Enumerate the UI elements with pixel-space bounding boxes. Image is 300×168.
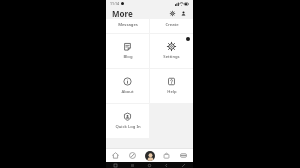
- staticText: Quick Log In: [115, 124, 141, 130]
- button[interactable]: Profile: [180, 10, 187, 17]
- staticText: Create: [165, 22, 179, 28]
- staticText: Settings: [163, 54, 180, 60]
- button[interactable]: Help: [150, 69, 193, 103]
- staticText: Blog: [123, 54, 133, 60]
- button[interactable]: Create: [150, 19, 193, 33]
- button[interactable]: Quick Log In: [106, 104, 149, 138]
- button[interactable]: Settings: [150, 34, 193, 68]
- button[interactable]: Messages: [106, 19, 149, 33]
- button[interactable]: Settings: [169, 10, 176, 17]
- button[interactable]: About: [106, 69, 149, 103]
- staticText: 11:14: [110, 1, 119, 6]
- button[interactable]: Account: [145, 151, 155, 161]
- staticText: Messages: [118, 22, 138, 28]
- button[interactable]: Blog: [106, 34, 149, 68]
- button[interactable]: Menu: [178, 150, 189, 161]
- staticText: About: [121, 89, 134, 95]
- button[interactable]: Activity: [127, 150, 138, 161]
- staticText: More: [112, 8, 133, 19]
- button[interactable]: Shop: [161, 150, 172, 161]
- button[interactable]: Home: [110, 150, 121, 161]
- staticText: Help: [167, 89, 177, 95]
